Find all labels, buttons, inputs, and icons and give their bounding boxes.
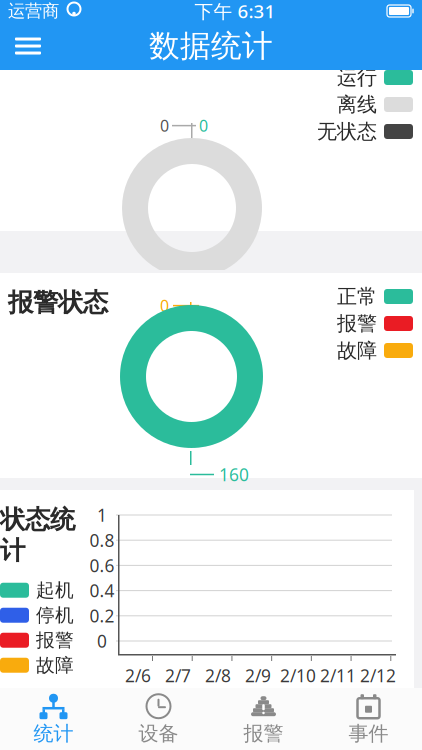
staticText: 0 <box>199 115 208 136</box>
button[interactable]: 事件 <box>316 691 421 747</box>
staticText: 状态统计 <box>0 504 75 566</box>
staticText: 0.8 <box>89 529 114 552</box>
staticText: 无状态 <box>317 119 377 144</box>
staticText: 离线 <box>337 92 377 117</box>
staticText: 0.6 <box>89 554 114 577</box>
staticText: 正常 <box>337 284 377 309</box>
staticText: 2/8 <box>205 664 231 687</box>
staticText: 2/12 <box>360 664 396 687</box>
staticText: 1 <box>97 503 107 526</box>
staticText: 0.4 <box>89 579 114 602</box>
staticText: 报警 <box>243 721 283 746</box>
staticText: 统计 <box>33 721 73 746</box>
staticText: 故障 <box>337 338 377 363</box>
staticText: 0.2 <box>89 604 114 627</box>
button[interactable]: Menu <box>0 24 56 68</box>
staticText: 2/11 <box>320 664 356 687</box>
staticText: 事件 <box>348 721 388 746</box>
staticText: 160 <box>214 463 249 486</box>
staticText: 0 <box>97 629 107 652</box>
staticText: 2/10 <box>280 664 316 687</box>
staticText: 停机 <box>36 604 74 627</box>
staticText: 160 <box>192 286 227 309</box>
staticText: 0 <box>160 115 169 136</box>
staticText: 运营商 <box>8 0 59 22</box>
button[interactable]: 设备 <box>106 691 211 747</box>
staticText: 运行 <box>337 65 377 90</box>
button[interactable]: 报警 <box>211 691 316 747</box>
staticText: 0 <box>160 295 169 316</box>
staticText: 运行状态 <box>8 41 108 72</box>
staticText: 故障 <box>36 654 74 677</box>
button[interactable]: 统计 <box>1 691 106 747</box>
staticText: 2/9 <box>245 664 271 687</box>
staticText: 起机 <box>36 579 74 602</box>
staticText: 报警 <box>337 311 377 336</box>
staticText: 数据统计 <box>149 27 273 65</box>
staticText: 2/6 <box>125 664 151 687</box>
staticText: 设备 <box>138 721 178 746</box>
staticText: 报警 <box>36 629 74 652</box>
staticText: 报警状态 <box>8 287 108 318</box>
staticText: 下午 6:31 <box>194 0 275 23</box>
staticText: 2/7 <box>165 664 191 687</box>
